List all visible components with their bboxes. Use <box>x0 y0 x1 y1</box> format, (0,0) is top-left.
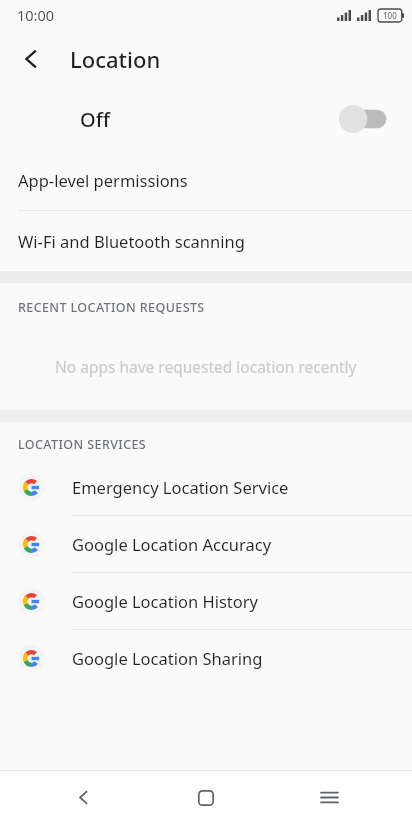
staticText: 100 <box>383 10 397 21</box>
staticText: App-level permissions <box>18 169 188 191</box>
staticText: No apps have requested location recently <box>55 356 357 377</box>
staticText: Google Location Sharing <box>72 647 263 669</box>
staticText: LOCATION SERVICES <box>18 436 147 453</box>
button[interactable]: Recents <box>289 771 369 824</box>
button[interactable]: Google Location History <box>0 573 412 629</box>
button[interactable]: Google Location Accuracy <box>0 516 412 572</box>
button[interactable]: Home <box>166 771 246 824</box>
staticText: Google Location Accuracy <box>72 533 272 555</box>
button[interactable]: Off <box>0 88 412 150</box>
staticText: Google Location History <box>72 590 259 612</box>
button[interactable]: Back <box>43 771 123 824</box>
button[interactable]: Google Location Sharing <box>0 630 412 686</box>
staticText: Wi-Fi and Bluetooth scanning <box>18 230 245 252</box>
staticText: 10:00 <box>17 5 55 25</box>
staticText: Location <box>70 44 161 74</box>
button[interactable]: Back <box>9 37 53 81</box>
staticText: Off <box>80 106 110 133</box>
button[interactable]: Wi-Fi and Bluetooth scanning <box>0 211 412 271</box>
button[interactable]: Location off <box>338 104 390 134</box>
staticText: Emergency Location Service <box>72 476 289 498</box>
button[interactable]: Emergency Location Service <box>0 459 412 515</box>
staticText: RECENT LOCATION REQUESTS <box>18 299 205 316</box>
button[interactable]: App-level permissions <box>0 150 412 210</box>
